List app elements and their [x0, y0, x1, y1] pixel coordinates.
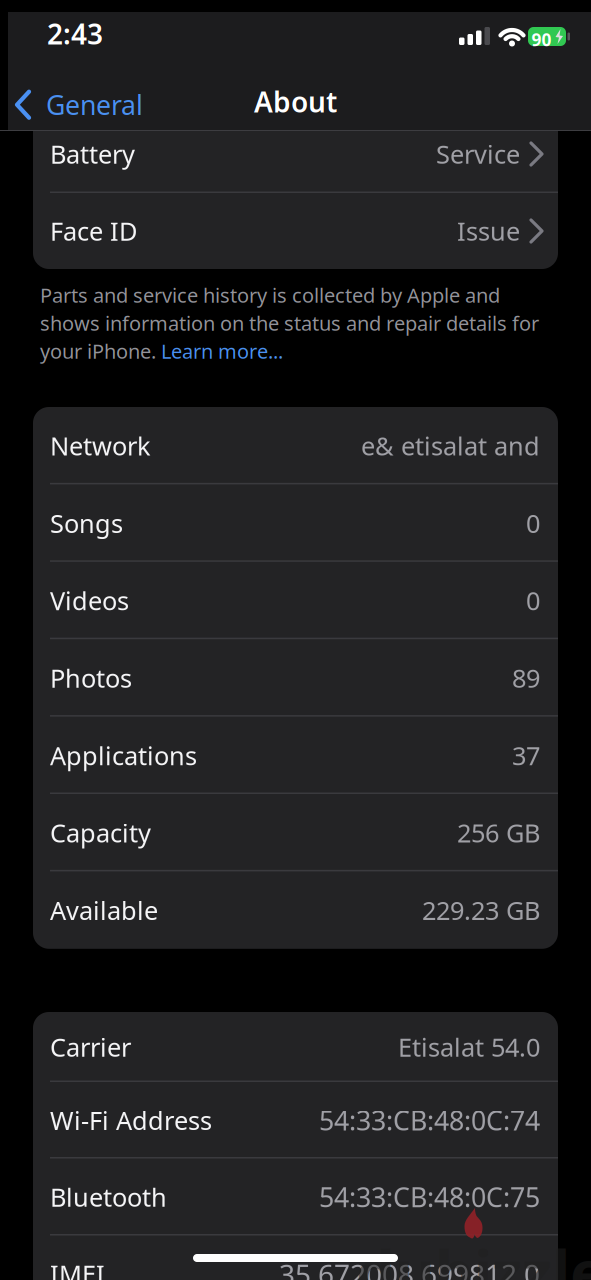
staticText: 54:33:CB:48:0C:74	[319, 1102, 540, 1138]
staticText: 229.23 GB	[422, 893, 540, 927]
button[interactable]: Back	[0, 0, 128, 35]
staticText: dubizzle	[356, 1230, 591, 1280]
staticText: Bluetooth	[50, 1180, 167, 1214]
staticText: 89	[512, 661, 540, 695]
staticText: Photos	[50, 661, 132, 695]
staticText: Carrier	[50, 1030, 131, 1064]
staticText: 35 672008 699812 0	[279, 1255, 540, 1280]
staticText: Parts and service history is collected b…	[40, 282, 500, 308]
staticText: Face ID	[50, 214, 137, 248]
staticText: General	[46, 87, 143, 122]
staticText: 90	[531, 28, 551, 51]
button[interactable]: Learn more...	[161, 338, 283, 364]
staticText: your iPhone.	[40, 338, 161, 364]
staticText: Service	[436, 137, 520, 171]
staticText: e& etisalat and	[361, 429, 540, 462]
staticText: shows information on the status and repa…	[40, 310, 539, 336]
staticText: Network	[50, 429, 151, 462]
staticText: Etisalat 54.0	[398, 1030, 540, 1064]
button[interactable]: Face ID	[33, 193, 558, 269]
staticText: IMEI	[50, 1257, 105, 1280]
staticText: 37	[512, 738, 540, 772]
staticText: Wi-Fi Address	[50, 1103, 212, 1137]
staticText: 54:33:CB:48:0C:75	[319, 1179, 540, 1215]
staticText: 2:43	[47, 15, 103, 52]
staticText: Applications	[50, 738, 197, 772]
staticText: About	[254, 83, 337, 120]
staticText: Battery	[50, 137, 135, 171]
staticText: Learn more...	[161, 338, 283, 364]
button[interactable]: Battery	[33, 115, 558, 193]
staticText: Available	[50, 893, 158, 927]
staticText: Videos	[50, 584, 129, 617]
staticText: Songs	[50, 506, 123, 540]
staticText: 256 GB	[457, 816, 540, 849]
staticText: 0	[526, 584, 540, 617]
staticText: Capacity	[50, 816, 151, 849]
staticText: Issue	[457, 214, 520, 248]
staticText: 0	[526, 506, 540, 540]
